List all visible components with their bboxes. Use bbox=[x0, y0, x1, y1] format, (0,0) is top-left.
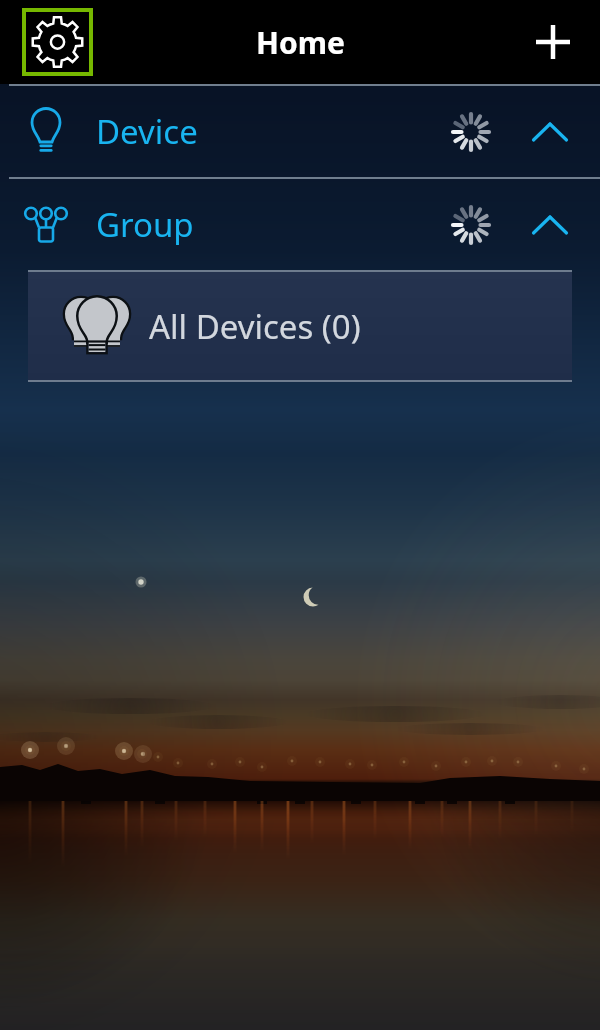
button[interactable]: Add bbox=[519, 8, 587, 76]
button[interactable]: Group bbox=[0, 179, 600, 270]
button[interactable]: Device bbox=[0, 86, 600, 177]
button[interactable]: All Devices (0) bbox=[28, 270, 572, 382]
button[interactable]: Settings bbox=[26, 12, 89, 72]
button[interactable]: Collapse bbox=[523, 198, 577, 252]
staticText: All Devices (0) bbox=[149, 304, 361, 349]
staticText: Device bbox=[96, 109, 198, 154]
staticText: Home bbox=[256, 22, 345, 63]
button[interactable]: Collapse bbox=[523, 105, 577, 159]
staticText: Group bbox=[96, 202, 194, 247]
